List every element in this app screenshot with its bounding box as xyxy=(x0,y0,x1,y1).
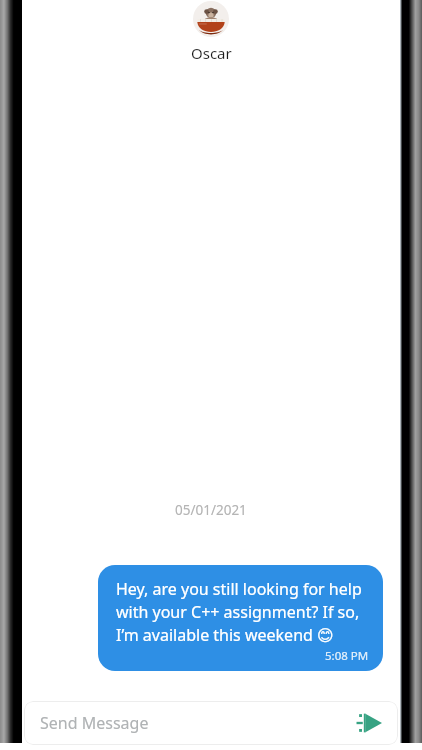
button[interactable]: Send xyxy=(352,706,386,740)
staticText: Hey, are you still looking for help with… xyxy=(116,578,369,646)
staticText: 05/01/2021 xyxy=(175,501,247,519)
staticText: Send Message xyxy=(40,712,149,734)
button[interactable]: Hey, are you still looking for help with… xyxy=(98,565,383,671)
button[interactable]: Send Message xyxy=(24,701,398,745)
staticText: Oscar xyxy=(191,43,232,63)
button[interactable]: Oscar xyxy=(22,0,400,63)
staticText: 5:08 PM xyxy=(325,648,369,664)
